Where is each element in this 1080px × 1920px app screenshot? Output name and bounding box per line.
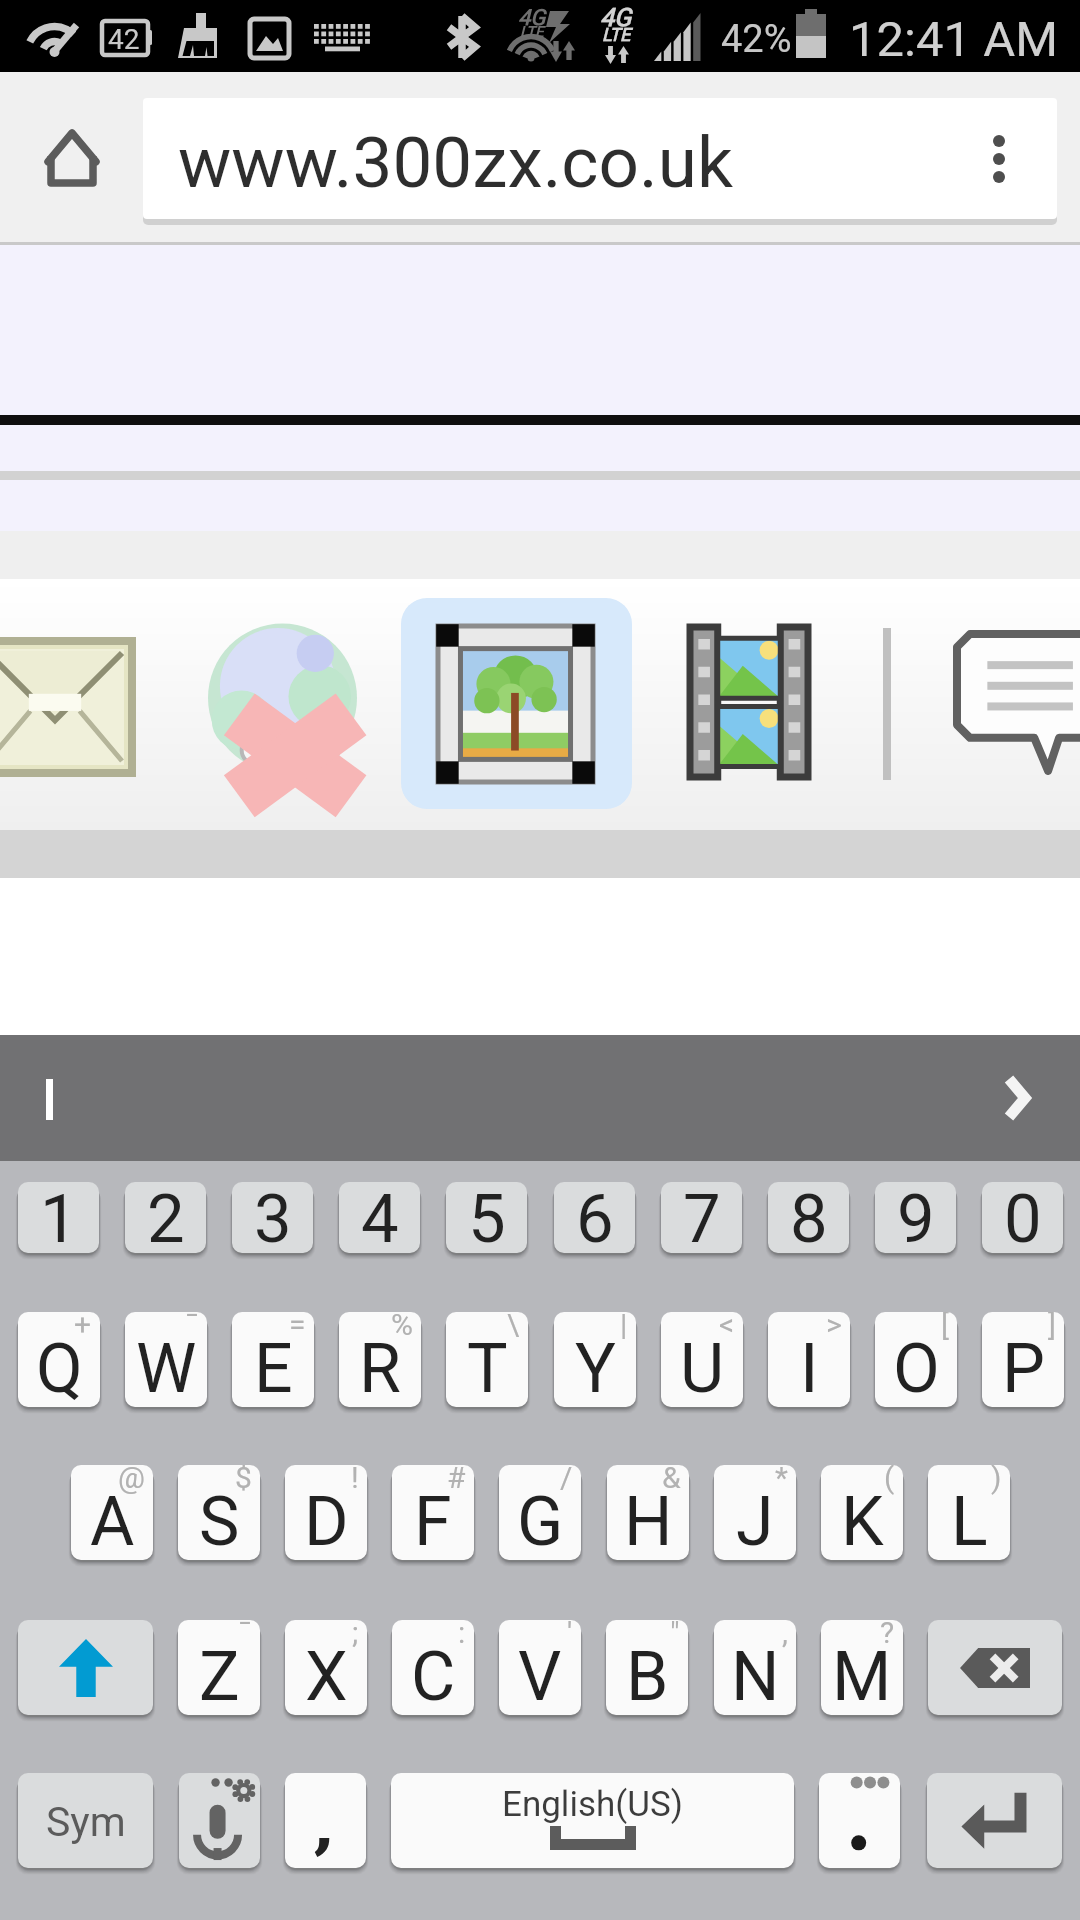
staticText: P — [1002, 1329, 1045, 1407]
button[interactable]: F — [392, 1465, 474, 1560]
staticText: , — [782, 1620, 788, 1650]
staticText: V — [518, 1637, 562, 1715]
button[interactable]: 2 — [125, 1182, 206, 1253]
staticText: L — [951, 1482, 988, 1560]
button[interactable]: Sym — [18, 1773, 153, 1868]
staticText: 2 — [147, 1182, 185, 1251]
staticText: ] — [1048, 1312, 1056, 1342]
staticText: 5 — [468, 1182, 506, 1251]
staticText: LTE — [602, 24, 631, 45]
staticText: 0 — [1004, 1182, 1042, 1251]
button[interactable]: Quote — [950, 622, 1080, 792]
staticText: ; — [352, 1620, 359, 1650]
button[interactable]: 6 — [554, 1182, 635, 1253]
staticText: J — [736, 1482, 774, 1560]
button[interactable]: Shift — [18, 1620, 153, 1715]
button[interactable]: U — [661, 1312, 743, 1407]
staticText: 4G — [600, 3, 632, 32]
button[interactable]: 4 — [339, 1182, 420, 1253]
staticText: 1 — [40, 1182, 78, 1251]
button[interactable]: 9 — [875, 1182, 956, 1253]
button[interactable]: O — [875, 1312, 957, 1407]
button[interactable]: Q — [18, 1312, 100, 1407]
button[interactable]: A — [71, 1465, 153, 1560]
button[interactable]: D — [285, 1465, 367, 1560]
staticText: 7 — [683, 1182, 721, 1251]
staticText: 6 — [576, 1182, 614, 1251]
button[interactable]: Backspace — [928, 1620, 1062, 1715]
button[interactable]: W — [125, 1312, 207, 1407]
button[interactable]: 0 — [982, 1182, 1063, 1253]
staticText: English(US) — [502, 1784, 683, 1825]
staticText: T — [467, 1329, 508, 1407]
staticText: 8 — [790, 1182, 828, 1251]
button[interactable]: L — [928, 1465, 1010, 1560]
button[interactable]: H — [607, 1465, 689, 1560]
staticText: N — [731, 1637, 780, 1715]
staticText: 42 — [108, 23, 140, 56]
staticText: K — [841, 1482, 884, 1560]
staticText: # — [447, 1465, 466, 1495]
button[interactable]: Y — [554, 1312, 636, 1407]
button[interactable]: X — [285, 1620, 367, 1715]
button[interactable]: Next suggestion — [1003, 1071, 1055, 1125]
button[interactable]: T — [446, 1312, 528, 1407]
staticText: < — [719, 1312, 735, 1342]
staticText: = — [289, 1312, 306, 1342]
button[interactable]: 3 — [232, 1182, 313, 1253]
staticText: 9 — [897, 1182, 935, 1251]
staticText: C — [411, 1637, 456, 1715]
staticText: D — [304, 1482, 349, 1560]
staticText: 42% — [721, 17, 792, 62]
staticText: O — [893, 1329, 940, 1407]
staticText: R — [359, 1329, 401, 1407]
button[interactable]: N — [714, 1620, 796, 1715]
button[interactable]: 7 — [661, 1182, 742, 1253]
staticText: 4G — [518, 5, 546, 31]
button[interactable]: E — [232, 1312, 314, 1407]
button[interactable]: 5 — [446, 1182, 527, 1253]
button[interactable]: 1 — [18, 1182, 99, 1253]
button[interactable]: Z — [178, 1620, 260, 1715]
button[interactable]: Enter — [927, 1773, 1062, 1868]
button[interactable]: G — [499, 1465, 581, 1560]
button[interactable]: English(US) — [391, 1773, 794, 1868]
staticText: Q — [36, 1329, 83, 1407]
button[interactable]: S — [178, 1465, 260, 1560]
staticText: E — [254, 1329, 293, 1407]
button[interactable]: J — [714, 1465, 796, 1560]
button[interactable]: C — [392, 1620, 474, 1715]
button[interactable]: K — [821, 1465, 903, 1560]
staticText: 12:41 AM — [849, 11, 1058, 68]
staticText: ¯ — [185, 1312, 199, 1342]
button[interactable]: I — [768, 1312, 850, 1407]
button[interactable]: Comma — [285, 1773, 366, 1868]
button[interactable]: R — [339, 1312, 421, 1407]
button[interactable]: Period — [819, 1773, 900, 1868]
button[interactable]: 8 — [768, 1182, 849, 1253]
staticText: [ — [941, 1312, 949, 1342]
staticText: : — [458, 1620, 466, 1650]
button[interactable]: V — [499, 1620, 581, 1715]
staticText: % — [391, 1312, 413, 1342]
button[interactable]: www.300zx.co.uk — [143, 98, 1057, 219]
staticText: LTE — [520, 23, 544, 41]
button[interactable]: Home — [22, 98, 122, 218]
button[interactable]: B — [606, 1620, 688, 1715]
button[interactable]: M — [821, 1620, 903, 1715]
staticText: 4 — [361, 1182, 399, 1251]
button[interactable]: Link — [205, 622, 365, 792]
staticText: U — [680, 1329, 725, 1407]
staticText: / — [560, 1465, 573, 1495]
button[interactable]: Next suggestion — [0, 1035, 1080, 1161]
button[interactable]: Email — [0, 622, 160, 792]
staticText: Sym — [46, 1798, 126, 1846]
button[interactable]: Insert video — [680, 622, 820, 792]
button[interactable]: Voice input — [179, 1773, 260, 1868]
staticText: ( — [884, 1465, 895, 1495]
button[interactable]: Insert image — [401, 598, 632, 809]
staticText: 3 — [254, 1182, 292, 1251]
button[interactable]: More options — [941, 98, 1057, 219]
staticText: ¯ — [238, 1620, 252, 1650]
button[interactable]: P — [982, 1312, 1064, 1407]
